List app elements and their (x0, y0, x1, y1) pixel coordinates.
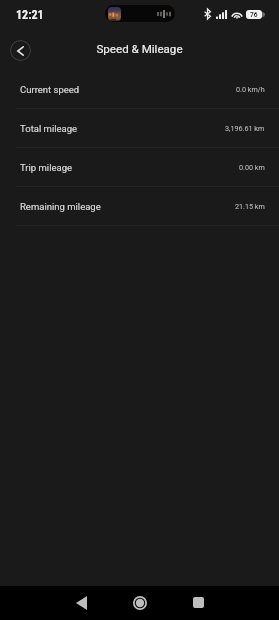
button[interactable]: Recent apps (178, 586, 218, 620)
staticText: 21.15 km (235, 202, 265, 210)
staticText: 12:21 (16, 8, 44, 22)
staticText: 76 (250, 11, 258, 19)
button[interactable]: Back (10, 40, 31, 61)
button[interactable]: Home (120, 586, 160, 620)
button[interactable]: Back (61, 586, 101, 620)
button[interactable]: Trip mileage (0, 148, 279, 187)
staticText: 0.0 km/h (236, 85, 265, 93)
staticText: Speed & Mileage (96, 42, 183, 56)
staticText: Trip mileage (20, 162, 73, 173)
button[interactable]: Remaining mileage (0, 187, 279, 226)
staticText: Current speed (20, 84, 80, 95)
staticText: 3,196.61 km (225, 124, 265, 132)
button[interactable]: Total mileage (0, 109, 279, 148)
button[interactable]: Current speed (0, 70, 279, 109)
staticText: Remaining mileage (20, 201, 101, 212)
staticText: Total mileage (20, 123, 78, 134)
staticText: 0.00 km (239, 163, 265, 171)
